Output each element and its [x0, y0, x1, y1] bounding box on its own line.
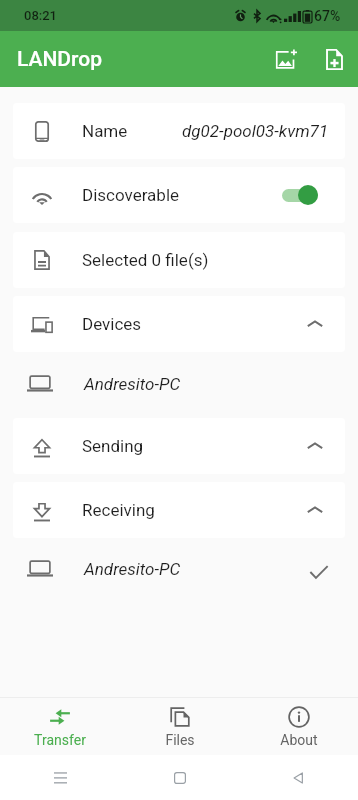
- staticText: LANDrop: [17, 47, 102, 72]
- staticText: Devices: [82, 314, 142, 334]
- button[interactable]: Add file: [310, 35, 358, 83]
- button[interactable]: Back: [239, 755, 358, 800]
- button[interactable]: Recents: [0, 755, 120, 800]
- button[interactable]: Files: [120, 698, 239, 755]
- staticText: Andresito-PC: [84, 559, 181, 579]
- staticText: 08:21: [24, 8, 57, 23]
- staticText: Selected 0 file(s): [82, 250, 209, 270]
- staticText: Receiving: [82, 500, 155, 520]
- staticText: Files: [165, 732, 195, 748]
- button[interactable]: Add image: [262, 35, 310, 83]
- button[interactable]: Sending: [13, 418, 345, 474]
- staticText: Name: [82, 121, 128, 141]
- staticText: dg02-pool03-kvm71: [182, 121, 329, 141]
- staticText: Andresito-PC: [84, 374, 181, 394]
- button[interactable]: Selected 0 file(s): [13, 232, 345, 288]
- staticText: 67%: [314, 8, 341, 24]
- button[interactable]: Discoverable: [13, 167, 345, 223]
- staticText: About: [280, 732, 318, 748]
- button[interactable]: Devices: [13, 296, 345, 352]
- staticText: Sending: [82, 436, 144, 456]
- button[interactable]: Andresito-PC: [27, 352, 331, 418]
- staticText: Transfer: [34, 732, 86, 748]
- button[interactable]: About: [239, 698, 358, 755]
- button[interactable]: Andresito-PC: [27, 538, 331, 604]
- button[interactable]: Name: [13, 103, 345, 159]
- button[interactable]: Receiving: [13, 482, 345, 538]
- staticText: Discoverable: [82, 185, 180, 205]
- button[interactable]: Transfer: [0, 698, 120, 755]
- button[interactable]: Home: [120, 755, 239, 800]
